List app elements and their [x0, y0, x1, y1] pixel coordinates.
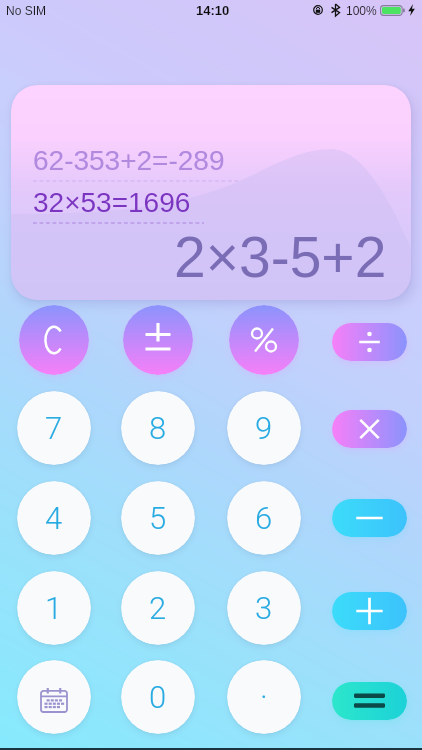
staticText: 5: [149, 500, 167, 536]
staticText: 3: [255, 590, 273, 626]
staticText: 100%: [346, 4, 377, 17]
button[interactable]: Divide: [332, 323, 407, 361]
staticText: 6: [255, 500, 273, 536]
staticText: 4: [45, 500, 63, 536]
button[interactable]: Plus minus: [123, 305, 193, 375]
button[interactable]: 4: [17, 481, 91, 555]
staticText: 8: [149, 410, 167, 446]
staticText: 2: [149, 590, 167, 626]
staticText: 9: [255, 410, 273, 446]
staticText: ·: [260, 679, 268, 715]
button[interactable]: ·: [227, 660, 301, 734]
button[interactable]: 0: [121, 660, 195, 734]
button[interactable]: Equals: [332, 682, 407, 720]
button[interactable]: 8: [121, 391, 195, 465]
button[interactable]: 5: [121, 481, 195, 555]
staticText: 14:10: [196, 3, 230, 18]
button[interactable]: Plus: [332, 592, 407, 630]
staticText: 0: [149, 679, 167, 715]
button[interactable]: Percent: [229, 305, 299, 375]
button[interactable]: History: [17, 660, 91, 734]
button[interactable]: 6: [227, 481, 301, 555]
staticText: No SIM: [6, 4, 47, 17]
staticText: 2×3-5+2: [174, 225, 387, 289]
button[interactable]: 9: [227, 391, 301, 465]
staticText: 1: [45, 590, 63, 626]
button[interactable]: 1: [17, 571, 91, 645]
button[interactable]: Minus: [332, 499, 407, 537]
staticText: 62-353+2=-289: [33, 145, 225, 176]
staticText: 7: [45, 410, 63, 446]
staticText: 32×53=1696: [33, 187, 191, 218]
button[interactable]: Clear: [19, 305, 89, 375]
button[interactable]: 7: [17, 391, 91, 465]
button[interactable]: Multiply: [332, 410, 407, 448]
button[interactable]: 3: [227, 571, 301, 645]
button[interactable]: 2: [121, 571, 195, 645]
